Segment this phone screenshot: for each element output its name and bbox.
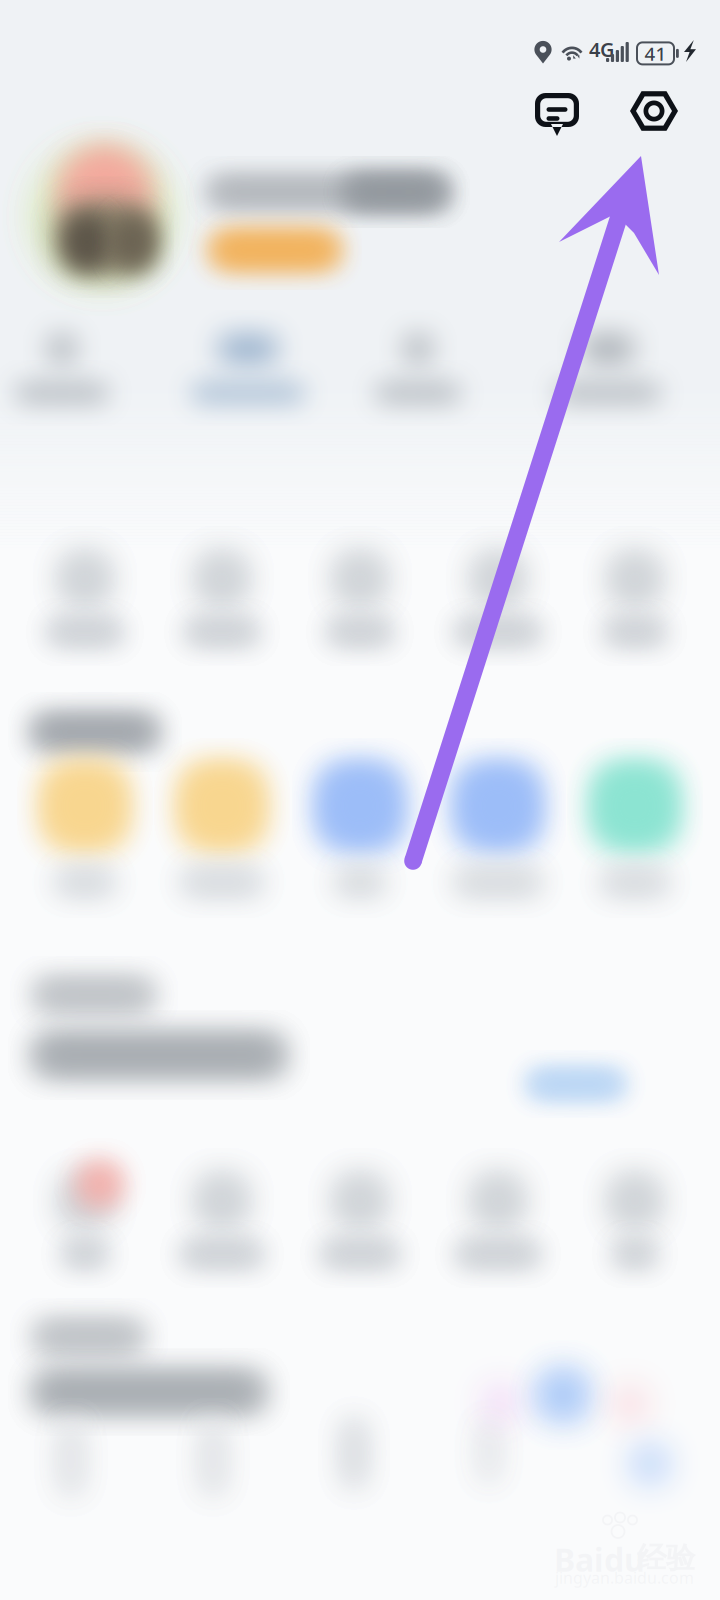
button[interactable]: Service (0, 0, 164, 164)
button[interactable]: Shortcut (0, 0, 150, 136)
button[interactable]: Shortcut (0, 0, 142, 136)
button[interactable]: Shortcut (0, 0, 134, 136)
button[interactable]: Shortcut (0, 0, 154, 136)
button[interactable]: Service (0, 0, 164, 164)
button[interactable]: Service (0, 0, 164, 164)
button[interactable]: Shortcut (0, 0, 134, 136)
button[interactable]: Messages (534, 92, 580, 137)
button[interactable]: Shortcut (0, 0, 144, 136)
staticText: 4G (589, 36, 615, 63)
staticText: 经验 (637, 1540, 695, 1576)
button[interactable]: Shortcut (0, 0, 134, 136)
button[interactable]: Profile photo (0, 0, 236, 236)
button[interactable]: Service (0, 0, 164, 164)
button[interactable]: Shortcut (0, 0, 152, 136)
button[interactable]: Settings (630, 88, 678, 134)
button[interactable]: Shortcut (0, 0, 134, 136)
button[interactable]: Service (0, 0, 164, 164)
button[interactable]: Shortcut (0, 0, 146, 136)
staticText: 41 (644, 41, 666, 66)
staticText: Baidu (554, 1538, 645, 1580)
